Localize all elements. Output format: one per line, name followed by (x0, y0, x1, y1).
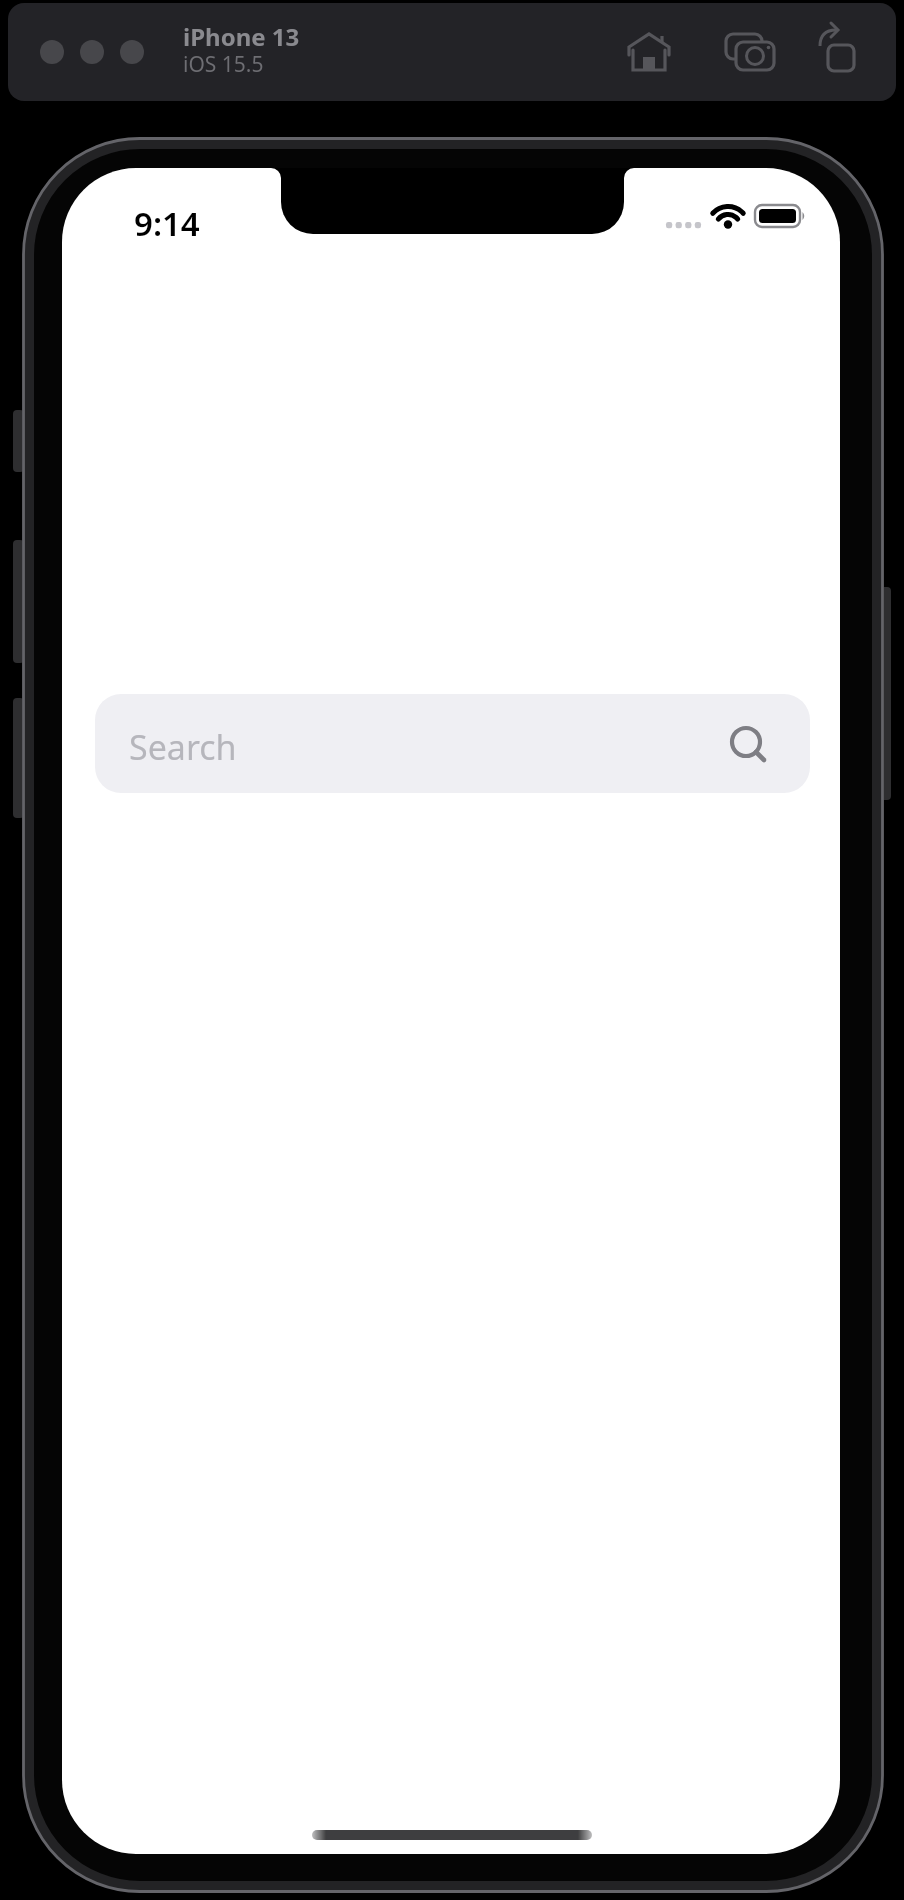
button[interactable]: Search (95, 694, 810, 793)
staticText: iPhone 13 (183, 20, 300, 53)
staticText: Search (129, 724, 237, 770)
button[interactable] (816, 19, 874, 79)
button[interactable] (720, 25, 782, 79)
staticText: iOS 15.5 (183, 50, 264, 79)
button[interactable] (621, 25, 677, 79)
staticText: 9:14 (134, 201, 200, 246)
